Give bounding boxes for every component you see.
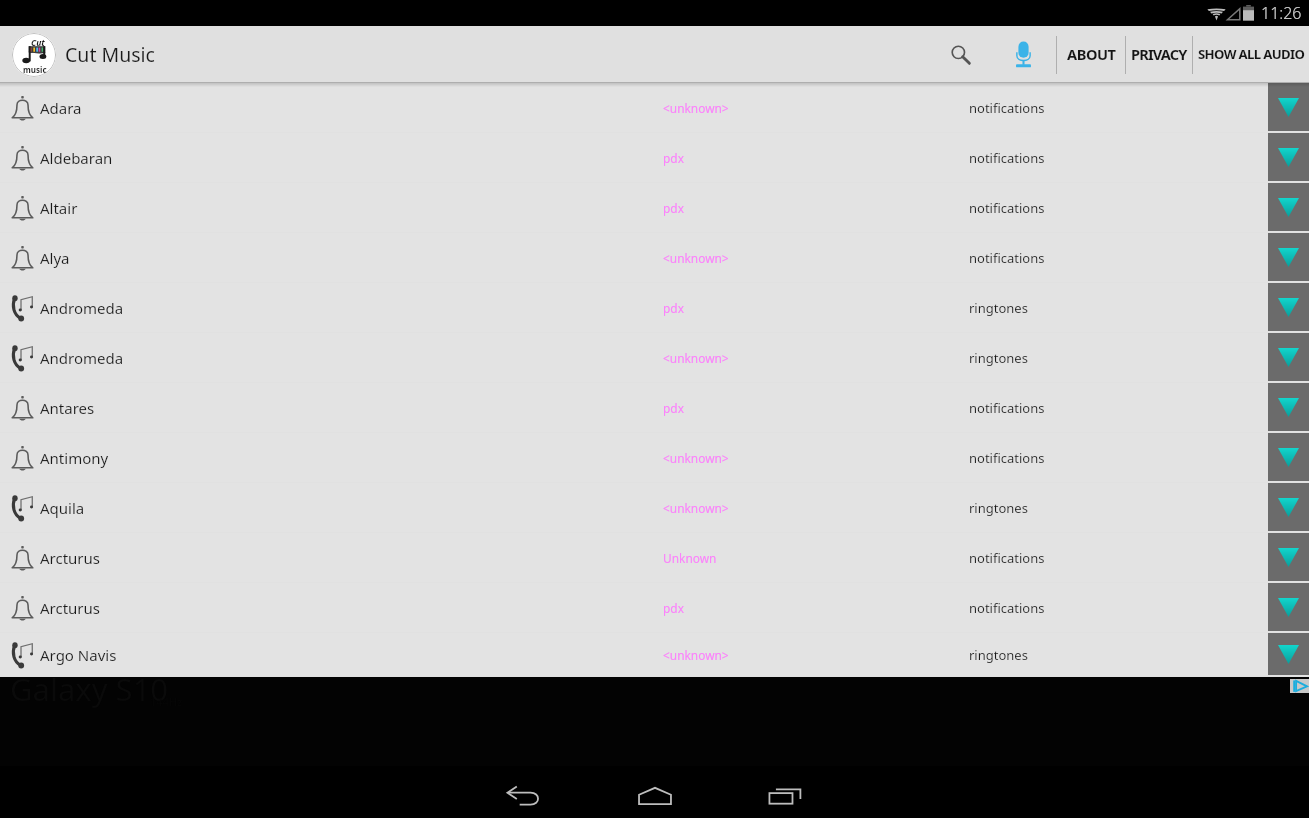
staticText: <unknown> [663, 500, 729, 516]
staticText: SHOW ALL AUDIO [1198, 45, 1305, 63]
staticText: notifications [969, 599, 1045, 617]
button[interactable]: Recent apps [726, 770, 846, 818]
staticText: ABOUT [1067, 44, 1116, 64]
staticText: Antares [40, 398, 95, 418]
staticText: notifications [969, 249, 1045, 267]
staticText: 11:26 [1261, 2, 1302, 24]
staticText: pdx [663, 150, 684, 166]
staticText: music [23, 64, 47, 75]
button[interactable]: Alya [0, 233, 1309, 283]
button[interactable]: Back [464, 770, 584, 818]
button[interactable]: ABOUT [1057, 26, 1125, 83]
staticText: Adara [40, 98, 82, 118]
button[interactable]: More options [1268, 233, 1309, 281]
staticText: <unknown> [663, 250, 729, 266]
staticText: notifications [969, 449, 1045, 467]
button[interactable]: More options [1268, 283, 1309, 331]
staticText: ringtones [969, 646, 1028, 664]
button[interactable]: More options [1268, 133, 1309, 181]
button[interactable]: More options [1268, 583, 1309, 631]
button[interactable]: PRIVACY [1126, 26, 1192, 83]
staticText: pdx [663, 300, 684, 316]
staticText: Aquila [40, 498, 85, 518]
button[interactable]: Adara [0, 83, 1309, 133]
button[interactable]: SHOW ALL AUDIO [1193, 26, 1309, 83]
button[interactable]: Arcturus [0, 583, 1309, 633]
button[interactable]: More options [1268, 383, 1309, 431]
staticText: notifications [969, 149, 1045, 167]
button[interactable]: Antimony [0, 433, 1309, 483]
staticText: <unknown> [663, 450, 729, 466]
staticText: pdx [663, 400, 684, 416]
button[interactable]: Aquila [0, 483, 1309, 533]
staticText: ringtones [969, 299, 1028, 317]
staticText: Unknown [663, 550, 717, 566]
staticText: Aldebaran [40, 148, 113, 168]
staticText: Antimony [40, 448, 109, 468]
button[interactable]: Ad choices info [1290, 679, 1309, 693]
button[interactable]: More options [1268, 633, 1309, 675]
button[interactable]: More options [1268, 533, 1309, 581]
button[interactable]: Home [595, 770, 715, 818]
staticText: <unknown> [663, 647, 729, 663]
staticText: PRIVACY [1131, 44, 1187, 64]
button[interactable]: Antares [0, 383, 1309, 433]
staticText: pdx [663, 600, 684, 616]
staticText: ringtones [969, 499, 1028, 517]
staticText: Cut Music [65, 41, 155, 68]
button[interactable]: Argo Navis [0, 633, 1309, 677]
button[interactable]: More options [1268, 333, 1309, 381]
button[interactable]: Andromeda [0, 333, 1309, 383]
button[interactable]: Aldebaran [0, 133, 1309, 183]
staticText: notifications [969, 199, 1045, 217]
button[interactable]: Voice search [991, 26, 1056, 83]
button[interactable]: More options [1268, 183, 1309, 231]
button[interactable]: Search [931, 26, 991, 83]
button[interactable]: More options [1268, 483, 1309, 531]
button[interactable]: More options [1268, 83, 1309, 131]
staticText: <unknown> [663, 350, 729, 366]
staticText: Andromeda [40, 348, 124, 368]
staticText: pdx [663, 200, 684, 216]
staticText: notifications [969, 99, 1045, 117]
staticText: notifications [969, 399, 1045, 417]
staticText: <unknown> [663, 100, 729, 116]
staticText: Cut [31, 37, 45, 49]
staticText: Arcturus [40, 598, 101, 618]
button[interactable]: Cut Music app icon [12, 33, 56, 77]
staticText: Galaxy S10 [10, 668, 169, 710]
staticText: Altair [40, 198, 78, 218]
staticText: ringtones [969, 349, 1028, 367]
staticText: Arcturus [40, 548, 101, 568]
staticText: Andromeda [40, 298, 124, 318]
button[interactable]: Altair [0, 183, 1309, 233]
button[interactable]: Arcturus [0, 533, 1309, 583]
button[interactable]: More options [1268, 433, 1309, 481]
staticText: notifications [969, 549, 1045, 567]
staticText: Alya [40, 248, 70, 268]
staticText: Argo Navis [40, 645, 117, 665]
button[interactable]: Andromeda [0, 283, 1309, 333]
